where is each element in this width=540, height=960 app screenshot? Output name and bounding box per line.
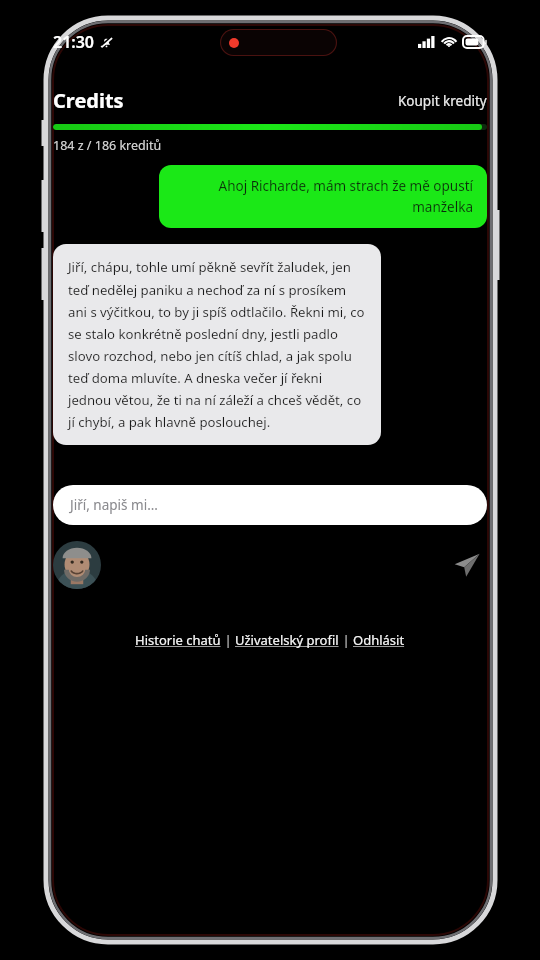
staticText: Odhlásit [353,631,405,649]
button[interactable]: Profilový obrázek [53,541,101,589]
staticText: | [339,631,353,649]
button[interactable]: Koupit kredity [398,92,487,110]
button[interactable]: Historie chatů [135,631,221,649]
button[interactable]: Odeslat [447,545,487,585]
staticText: Koupit kredity [398,92,487,110]
staticText: Jiří, napiš mi... [70,496,158,514]
button[interactable]: Odhlásit [353,631,405,649]
staticText: Uživatelský profil [235,631,339,649]
button[interactable]: Uživatelský profil [235,631,339,649]
staticText: Historie chatů [135,631,221,649]
button[interactable]: Ahoj Richarde, mám strach že mě opustí m… [159,165,487,228]
staticText: Jiří, chápu, tohle umí pěkně sevřít žalu… [68,258,366,431]
button[interactable]: Jiří, chápu, tohle umí pěkně sevřít žalu… [53,244,381,445]
staticText: 184 z / 186 kreditů [53,137,162,154]
staticText: | [221,631,235,649]
button[interactable]: Jiří, napiš mi... [53,485,487,525]
staticText: 21:30 [53,31,95,53]
staticText: Ahoj Richarde, mám strach že mě opustí m… [173,177,473,216]
staticText: Credits [53,87,124,114]
